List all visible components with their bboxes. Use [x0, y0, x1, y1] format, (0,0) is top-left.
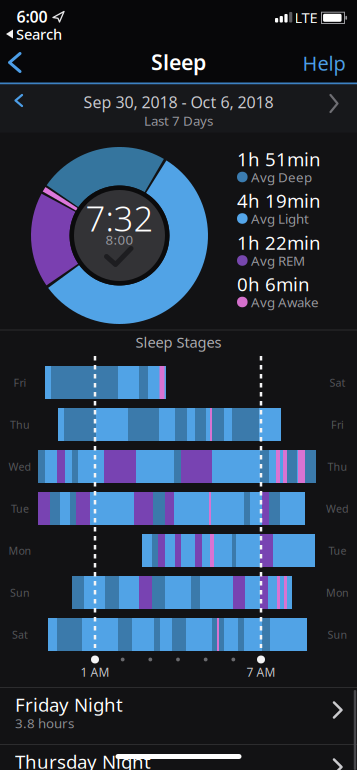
staticText: LTE: [294, 8, 317, 27]
staticText: Fri: [331, 417, 344, 432]
staticText: Tue: [328, 543, 346, 558]
staticText: Search: [16, 24, 62, 44]
button[interactable]: [323, 88, 345, 118]
staticText: Sleep Stages: [135, 332, 221, 352]
staticText: Sun: [327, 627, 347, 642]
button[interactable]: Search: [0, 25, 64, 43]
staticText: 7:32: [85, 195, 153, 241]
staticText: Tue: [11, 501, 29, 516]
staticText: 0h 6min: [237, 272, 310, 296]
staticText: Thu: [10, 417, 30, 432]
staticText: Avg REM: [251, 252, 305, 269]
staticText: Wed: [8, 459, 31, 474]
staticText: Mon: [326, 585, 349, 600]
staticText: Friday Night: [15, 692, 123, 717]
staticText: 1h 22min: [237, 230, 321, 255]
staticText: 3.8 hours: [15, 714, 74, 732]
staticText: 4h 19min: [237, 188, 321, 213]
staticText: 7 AM: [246, 664, 275, 680]
staticText: Last 7 Days: [144, 112, 213, 129]
staticText: Fri: [13, 375, 26, 390]
staticText: Mon: [8, 543, 31, 558]
button[interactable]: [8, 87, 30, 113]
staticText: Avg Awake: [251, 293, 319, 311]
staticText: 1 AM: [80, 664, 109, 680]
staticText: Thursday Night: [15, 749, 151, 770]
staticText: 6:00: [16, 6, 47, 27]
button[interactable]: [2, 45, 32, 79]
staticText: 1h 51min: [237, 147, 321, 171]
button[interactable]: Friday Night: [0, 687, 357, 744]
staticText: Sun: [10, 585, 30, 600]
staticText: Help: [302, 50, 345, 76]
staticText: Sat: [12, 627, 28, 642]
button[interactable]: Thursday Night: [0, 744, 357, 770]
staticText: Thu: [327, 459, 347, 474]
staticText: Sleep: [151, 48, 206, 76]
staticText: Sat: [329, 375, 345, 390]
staticText: Avg Deep: [251, 168, 312, 186]
staticText: 8:00: [105, 231, 133, 248]
staticText: Wed: [326, 501, 349, 516]
staticText: Avg Light: [251, 210, 309, 227]
staticText: Sep 30, 2018 - Oct 6, 2018: [83, 91, 273, 113]
button[interactable]: Help: [299, 48, 349, 78]
